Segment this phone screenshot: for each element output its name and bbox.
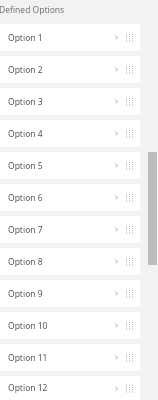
button[interactable]: Reorder Option 7 xyxy=(122,216,136,243)
button[interactable]: Option 12 xyxy=(0,376,140,400)
button[interactable]: Open Option 1 xyxy=(110,24,122,51)
button[interactable]: Open Option 11 xyxy=(110,344,122,371)
staticText: Option 7 xyxy=(8,224,110,236)
button[interactable]: Open Option 7 xyxy=(110,216,122,243)
button[interactable]: Reorder Option 12 xyxy=(122,376,136,400)
button[interactable]: Option 2 xyxy=(0,56,140,83)
button[interactable]: Reorder Option 11 xyxy=(122,344,136,371)
button[interactable]: Reorder Option 3 xyxy=(122,88,136,115)
staticText: Option 3 xyxy=(8,96,110,108)
button[interactable]: Reorder Option 1 xyxy=(122,24,136,51)
button[interactable]: Option 11 xyxy=(0,344,140,371)
button[interactable]: Reorder Option 5 xyxy=(122,152,136,179)
button[interactable]: Open Option 12 xyxy=(110,376,122,400)
button[interactable]: Option 4 xyxy=(0,120,140,147)
staticText: Option 9 xyxy=(8,288,110,300)
staticText: Option 10 xyxy=(8,320,110,332)
button[interactable]: Option 1 xyxy=(0,24,140,51)
button[interactable]: Reorder Option 6 xyxy=(122,184,136,211)
button[interactable]: Reorder Option 4 xyxy=(122,120,136,147)
button[interactable]: Open Option 6 xyxy=(110,184,122,211)
staticText: Option 5 xyxy=(8,160,110,172)
button[interactable]: Open Option 4 xyxy=(110,120,122,147)
button[interactable]: Open Option 2 xyxy=(110,56,122,83)
button[interactable]: Option 9 xyxy=(0,280,140,307)
button[interactable]: Open Option 10 xyxy=(110,312,122,339)
button[interactable]: Open Option 5 xyxy=(110,152,122,179)
button[interactable]: Reorder Option 8 xyxy=(122,248,136,275)
staticText: Option 4 xyxy=(8,128,110,140)
button[interactable]: Open Option 9 xyxy=(110,280,122,307)
button[interactable]: Option 3 xyxy=(0,88,140,115)
staticText: Option 11 xyxy=(8,352,110,364)
button[interactable]: Reorder Option 10 xyxy=(122,312,136,339)
staticText: Defined Options xyxy=(0,4,65,16)
staticText: Option 1 xyxy=(8,32,110,44)
button[interactable]: Option 8 xyxy=(0,248,140,275)
button[interactable]: Reorder Option 2 xyxy=(122,56,136,83)
button[interactable]: Reorder Option 9 xyxy=(122,280,136,307)
button[interactable]: Open Option 8 xyxy=(110,248,122,275)
button[interactable]: Option 6 xyxy=(0,184,140,211)
button[interactable]: Open Option 3 xyxy=(110,88,122,115)
button[interactable]: Option 7 xyxy=(0,216,140,243)
button[interactable]: Option 10 xyxy=(0,312,140,339)
staticText: Option 2 xyxy=(8,64,110,76)
button[interactable]: Option 5 xyxy=(0,152,140,179)
staticText: Option 6 xyxy=(8,192,110,204)
staticText: Option 12 xyxy=(8,382,110,394)
staticText: Option 8 xyxy=(8,256,110,268)
